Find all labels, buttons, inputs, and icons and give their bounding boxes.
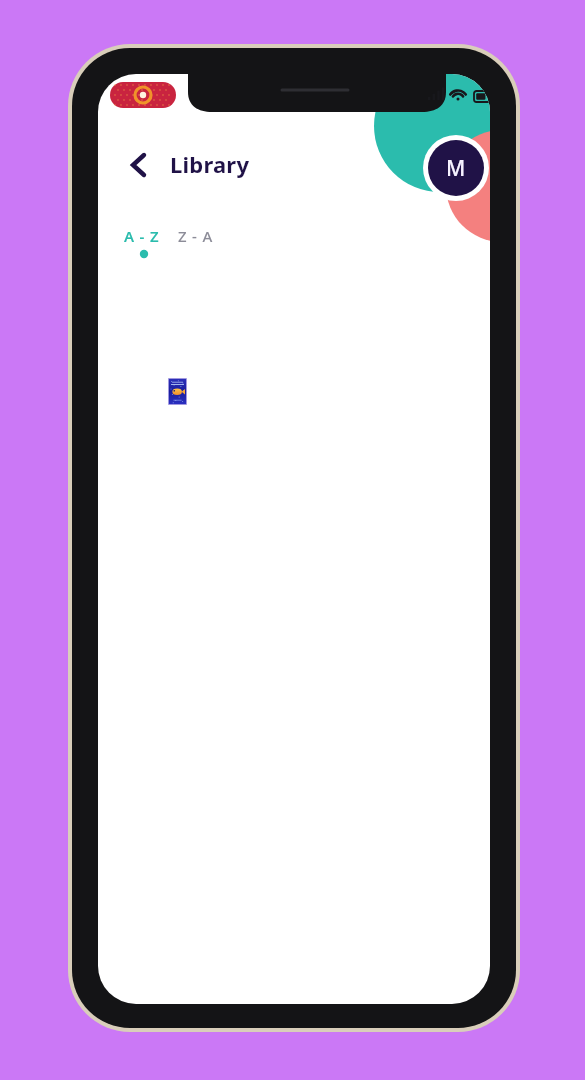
- staticText: Z - A: [178, 226, 214, 246]
- button[interactable]: Book cover: [167, 377, 188, 406]
- button[interactable]: Z - A: [176, 222, 216, 250]
- button[interactable]: Profile: [428, 140, 484, 196]
- staticText: Library: [170, 149, 250, 179]
- staticText: A - Z: [124, 226, 160, 246]
- button[interactable]: A - Z: [122, 222, 162, 250]
- button[interactable]: Back: [118, 145, 158, 185]
- staticText: M: [446, 154, 466, 183]
